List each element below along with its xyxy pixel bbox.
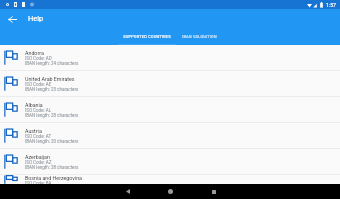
staticText: ISO Code: AE [25,82,52,87]
staticText: ISO Code: AD [25,56,52,61]
staticText: SUPPORTED COUNTRIES [123,34,171,39]
staticText: IBAN length: 28 characters [25,165,79,170]
staticText: Austria [25,128,42,134]
button[interactable]: Recent apps [192,184,235,199]
button[interactable]: Albania [0,97,340,122]
staticText: United Arab Emirates [25,76,75,82]
staticText: Azerbaijan [25,154,50,160]
staticText: Albania [25,102,43,108]
staticText: ISO Code: AT [25,134,52,139]
staticText: ISO Code: BA [25,181,52,184]
button[interactable]: Back [106,184,149,199]
button[interactable]: Navigate up [4,11,20,27]
staticText: ISO Code: AZ [25,160,52,165]
staticText: Help [28,14,44,23]
staticText: IBAN length: 28 characters [25,113,79,118]
staticText: IBAN length: 20 characters [25,139,79,144]
button[interactable]: Home [149,184,192,199]
staticText: IBAN length: 24 characters [25,61,79,66]
button[interactable]: United Arab Emirates [0,71,340,96]
staticText: ISO Code: AL [25,108,52,113]
staticText: 1:57 [326,2,337,8]
staticText: Bosnia and Herzegovina [25,175,82,181]
staticText: IBAN length: 23 characters [25,87,79,92]
staticText: Andorra [25,50,44,56]
button[interactable]: SUPPORTED COUNTRIES [118,28,176,45]
button[interactable]: Bosnia and Herzegovina [0,175,340,184]
button[interactable]: IBAN VALIDATION [176,28,222,45]
button[interactable]: Andorra [0,45,340,70]
button[interactable]: Austria [0,123,340,148]
staticText: IBAN VALIDATION [182,34,217,39]
button[interactable]: Azerbaijan [0,149,340,174]
